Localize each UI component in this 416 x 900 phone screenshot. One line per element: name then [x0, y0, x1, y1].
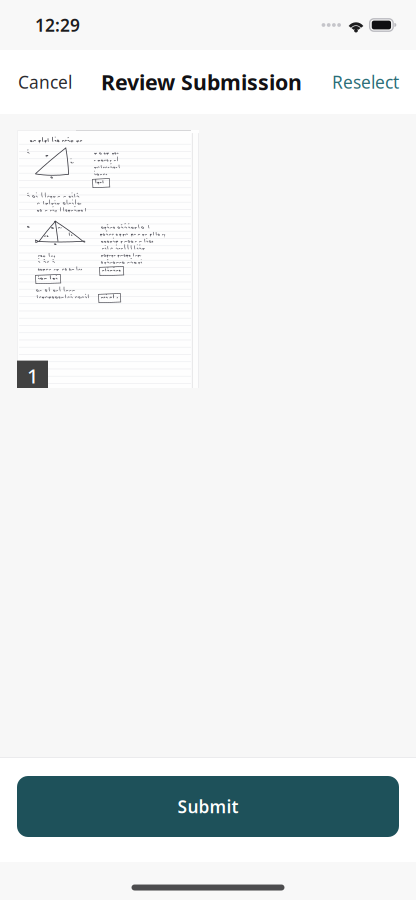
staticText: Review Submission — [101, 68, 302, 96]
staticText: Reselect — [332, 70, 399, 93]
staticText: 12:29 — [35, 13, 80, 36]
staticText: 1 — [27, 363, 38, 389]
staticText: Cancel — [18, 70, 72, 93]
button[interactable]: Cancel — [0, 57, 84, 107]
button[interactable]: Reselect — [320, 57, 416, 107]
button[interactable]: Submit — [17, 776, 399, 837]
staticText: Submit — [177, 795, 238, 818]
